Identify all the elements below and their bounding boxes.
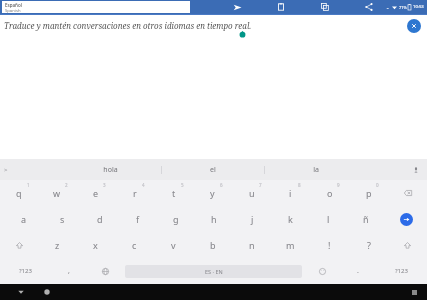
button[interactable]: o [310,180,349,206]
button[interactable]: Español [2,1,190,13]
staticText: w [53,187,61,199]
staticText: 4 [142,182,145,188]
staticText: 71% [399,5,407,10]
button[interactable]: s [43,206,81,232]
button[interactable]: Emoji [304,258,340,284]
staticText: 7 [259,182,262,188]
button[interactable]: p [349,180,388,206]
button[interactable]: f [119,206,157,232]
staticText: g [173,213,179,225]
button[interactable]: Clear text [407,19,421,33]
button[interactable]: h [195,206,233,232]
button[interactable]: Paste [274,0,288,14]
button[interactable]: r [115,180,154,206]
button[interactable]: More suggestions [1,165,11,175]
button[interactable]: u [232,180,271,206]
staticText: e [93,187,99,199]
button[interactable]: Shift [0,232,38,258]
button[interactable]: t [154,180,193,206]
staticText: ? [367,239,371,251]
staticText: ! [328,239,331,251]
staticText: el [210,165,216,175]
button[interactable]: ES · EN [125,265,302,278]
staticText: 6 [220,182,223,188]
button[interactable]: ?123 [0,258,51,284]
button[interactable]: Back [14,285,28,299]
staticText: 1 [27,182,30,188]
button[interactable]: x [76,232,115,258]
button[interactable]: j [233,206,271,232]
button[interactable]: e [76,180,115,206]
staticText: la [313,165,319,175]
staticText: . [357,266,359,276]
staticText: 2 [65,182,68,188]
staticText: j [251,213,254,225]
button[interactable]: Backspace [388,180,427,206]
staticText: , [68,266,70,276]
button[interactable]: la [265,159,367,180]
button[interactable]: z [38,232,76,258]
staticText: 3 [103,182,106,188]
button[interactable]: w [38,180,76,206]
staticText: l [327,213,330,225]
button[interactable]: m [271,232,310,258]
button[interactable]: ? [349,232,388,258]
staticText: 0 [376,182,379,188]
staticText: k [288,213,293,225]
staticText: 8 [298,182,301,188]
button[interactable]: y [193,180,232,206]
staticText: f [136,213,140,225]
button[interactable]: a [4,206,43,232]
staticText: y [210,187,215,199]
button[interactable]: i [271,180,310,206]
staticText: v [171,239,176,251]
staticText: Spanish [5,8,21,13]
staticText: > [4,166,8,174]
staticText: b [210,239,216,251]
staticText: hola [103,165,118,175]
staticText: u [249,187,255,199]
button[interactable]: b [193,232,232,258]
button[interactable]: Change language [87,258,123,284]
button[interactable]: d [81,206,119,232]
button[interactable]: Copy [318,0,332,14]
staticText: a [21,213,27,225]
staticText: q [16,187,22,199]
staticText: 9 [337,182,340,188]
staticText: z [55,239,60,251]
button[interactable]: Share [362,0,376,14]
button[interactable]: Send [230,0,244,14]
button[interactable]: ?123 [376,258,427,284]
staticText: o [327,187,333,199]
button[interactable]: ñ [347,206,385,232]
staticText: s [60,213,65,225]
staticText: ?123 [19,267,32,275]
staticText: t [172,187,176,199]
button[interactable]: Enter [385,206,427,232]
button[interactable]: v [154,232,193,258]
button[interactable]: c [115,232,154,258]
button[interactable]: l [309,206,347,232]
staticText: ñ [363,213,369,225]
button[interactable]: Home [40,285,54,299]
staticText: d [97,213,103,225]
staticText: 5 [181,182,184,188]
button[interactable]: g [157,206,195,232]
staticText: m [286,239,295,251]
button[interactable]: hola [60,159,161,180]
button[interactable]: Voice input [411,165,421,175]
button[interactable]: Shift [388,232,427,258]
button[interactable]: ! [310,232,349,258]
staticText: n [249,239,255,251]
button[interactable]: el [162,159,264,180]
button[interactable]: Recent apps [407,285,421,299]
staticText: ⌄ [386,5,390,10]
button[interactable]: n [232,232,271,258]
staticText: Traduce y mantén conversaciones en otros… [4,20,252,31]
staticText: i [289,187,292,199]
staticText: ?123 [395,267,408,275]
button[interactable]: q [0,180,38,206]
button[interactable]: k [271,206,309,232]
